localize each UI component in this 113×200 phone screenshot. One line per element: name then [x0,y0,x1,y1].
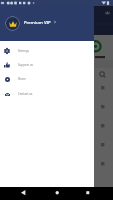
staticText: Support us [18,63,33,67]
button[interactable]: Premium VIP account [5,16,20,31]
button[interactable]: Premium [101,6,113,18]
staticText: Share [18,77,26,81]
button[interactable]: Contact us [0,86,94,101]
button[interactable]: Premium VIP [24,19,57,25]
staticText: Settings [18,49,29,53]
button[interactable]: Settings [0,43,94,58]
staticText: Contact us [18,92,33,96]
button[interactable]: Support us [0,57,94,72]
staticText: Premium VIP [24,19,51,25]
button[interactable]: Share [0,71,94,86]
